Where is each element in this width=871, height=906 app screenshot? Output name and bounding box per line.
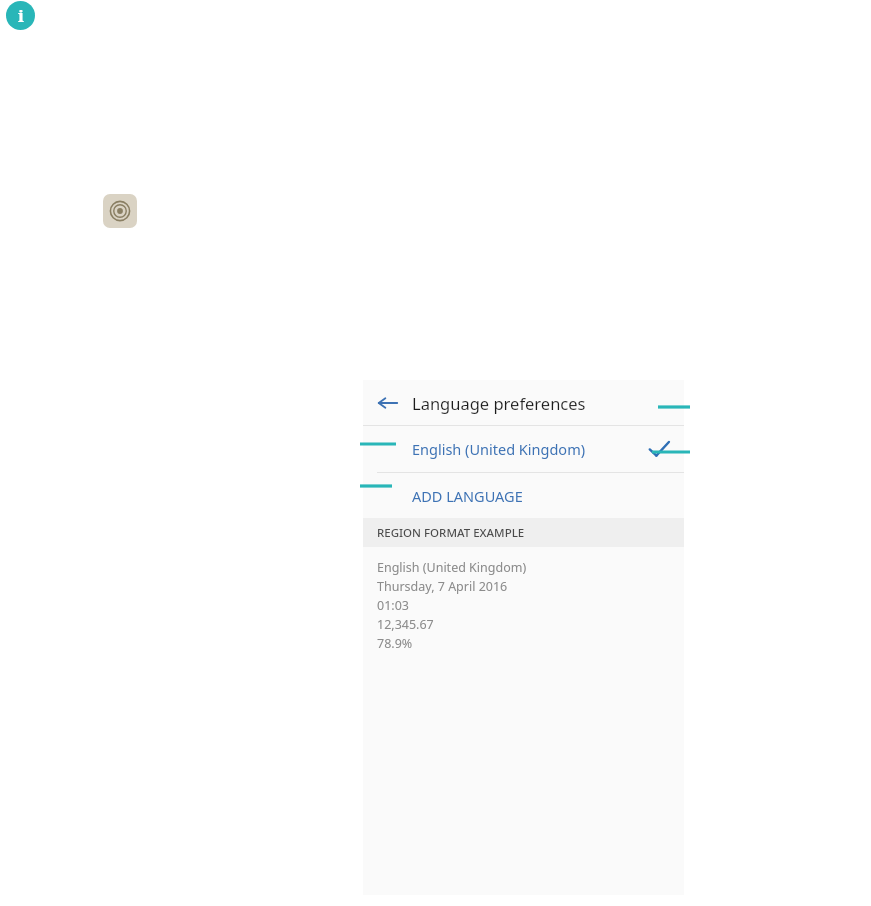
staticText: ADD LANGUAGE bbox=[412, 486, 523, 506]
staticText: Language preferences bbox=[412, 392, 586, 414]
button[interactable]: English (United Kingdom) bbox=[363, 426, 684, 472]
staticText: 01:03 bbox=[377, 597, 409, 614]
staticText: i bbox=[18, 4, 24, 27]
staticText: English (United Kingdom) bbox=[377, 559, 527, 576]
staticText: REGION FORMAT EXAMPLE bbox=[377, 525, 525, 541]
button[interactable]: Information bbox=[6, 1, 35, 30]
button[interactable]: Back bbox=[373, 388, 403, 418]
button[interactable]: Back bbox=[363, 380, 684, 425]
button[interactable]: Settings app icon bbox=[103, 194, 137, 228]
staticText: 12,345.67 bbox=[377, 616, 434, 633]
staticText: Thursday, 7 April 2016 bbox=[377, 578, 508, 595]
button[interactable]: ADD LANGUAGE bbox=[363, 473, 684, 518]
staticText: 78.9% bbox=[377, 635, 413, 652]
staticText: English (United Kingdom) bbox=[412, 439, 586, 459]
